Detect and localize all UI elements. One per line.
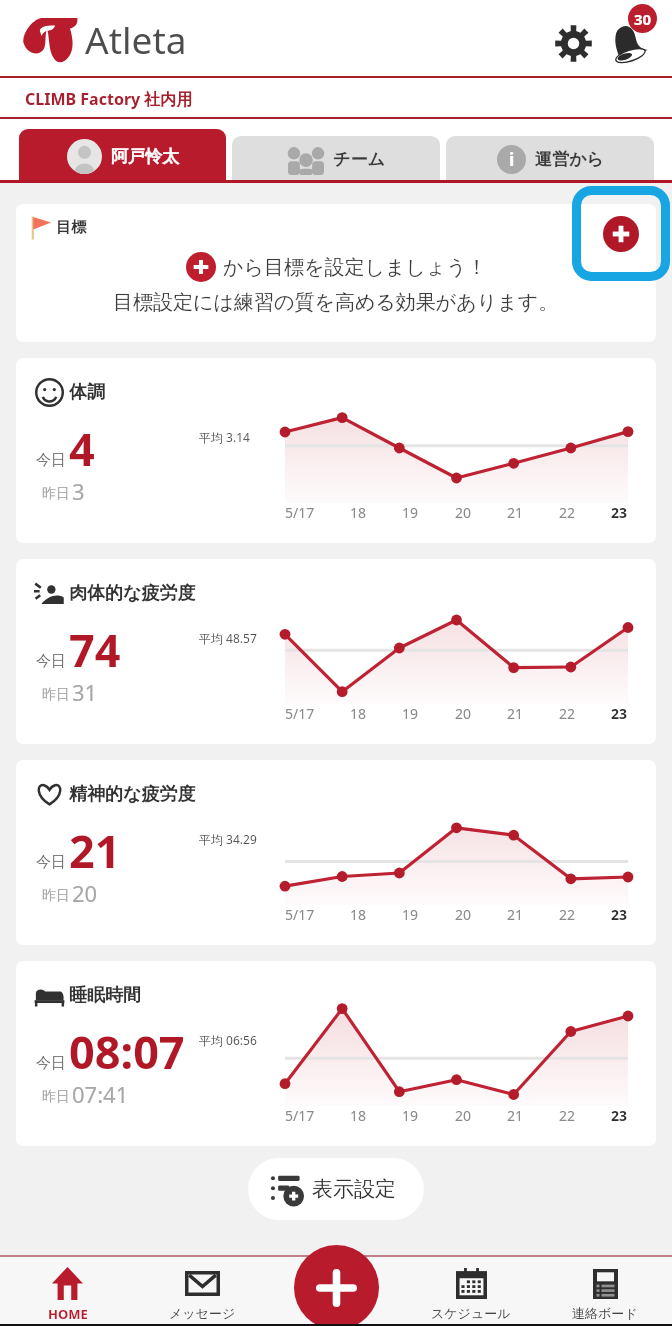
staticText: 22 bbox=[559, 704, 576, 723]
staticText: CLIMB Factory 社内用 bbox=[25, 88, 193, 110]
button[interactable]: Add goal bbox=[572, 186, 670, 281]
staticText: 昨日 bbox=[42, 1088, 70, 1106]
staticText: 18 bbox=[350, 704, 367, 723]
staticText: 18 bbox=[350, 905, 367, 924]
staticText: 5/17 bbox=[285, 704, 315, 723]
button[interactable]: i bbox=[446, 136, 654, 183]
staticText: 5/17 bbox=[285, 503, 315, 522]
staticText: 31 bbox=[72, 677, 98, 707]
staticText: 23 bbox=[611, 1106, 628, 1125]
staticText: 74 bbox=[69, 619, 121, 680]
button[interactable]: 肉体的な疲労度 bbox=[16, 559, 656, 744]
staticText: 21 bbox=[69, 820, 121, 881]
button[interactable]: 連絡ボード bbox=[538, 1267, 672, 1326]
staticText: Atleta bbox=[85, 14, 187, 64]
staticText: 08:07 bbox=[69, 1021, 185, 1082]
staticText: 30 bbox=[634, 9, 652, 29]
staticText: 21 bbox=[507, 503, 524, 522]
button[interactable]: 精神的な疲労度 bbox=[16, 760, 656, 945]
staticText: 目標設定には練習の質を高める効果があります。 bbox=[113, 290, 559, 315]
staticText: 阿戸怜太 bbox=[111, 146, 179, 167]
button[interactable]: チーム bbox=[232, 136, 440, 183]
staticText: メッセージ bbox=[169, 1305, 236, 1321]
staticText: 18 bbox=[350, 503, 367, 522]
button[interactable]: 阿戸怜太 bbox=[19, 129, 226, 183]
staticText: チーム bbox=[333, 149, 385, 170]
staticText: 昨日 bbox=[42, 887, 70, 905]
staticText: 18 bbox=[350, 1106, 367, 1125]
staticText: 昨日 bbox=[42, 686, 70, 704]
staticText: 平均 48.57 bbox=[199, 630, 257, 646]
staticText: 19 bbox=[402, 905, 419, 924]
button[interactable]: スケジュール bbox=[404, 1267, 538, 1326]
staticText: 4 bbox=[69, 418, 95, 479]
staticText: 23 bbox=[611, 905, 628, 924]
button[interactable]: HOME bbox=[0, 1267, 135, 1326]
button[interactable]: 体調 bbox=[16, 358, 656, 543]
staticText: 22 bbox=[559, 503, 576, 522]
staticText: 平均 06:56 bbox=[199, 1032, 257, 1048]
staticText: 20 bbox=[455, 704, 472, 723]
staticText: 体調 bbox=[69, 381, 105, 404]
staticText: 21 bbox=[507, 1106, 524, 1125]
button[interactable]: メッセージ bbox=[135, 1267, 270, 1326]
staticText: 07:41 bbox=[72, 1079, 129, 1109]
staticText: 5/17 bbox=[285, 1106, 315, 1125]
staticText: 今日 bbox=[36, 652, 66, 671]
staticText: 22 bbox=[559, 1106, 576, 1125]
staticText: 表示設定 bbox=[312, 1176, 396, 1202]
staticText: 22 bbox=[559, 905, 576, 924]
staticText: 3 bbox=[72, 476, 85, 506]
staticText: 今日 bbox=[36, 853, 66, 872]
staticText: 23 bbox=[611, 704, 628, 723]
staticText: 19 bbox=[402, 1106, 419, 1125]
staticText: 19 bbox=[402, 503, 419, 522]
staticText: i bbox=[509, 147, 515, 172]
staticText: 21 bbox=[507, 905, 524, 924]
staticText: 5/17 bbox=[285, 905, 315, 924]
button[interactable]: 睡眠時間 bbox=[16, 961, 656, 1146]
staticText: 連絡ボード bbox=[572, 1305, 638, 1321]
staticText: 肉体的な疲労度 bbox=[69, 582, 196, 605]
staticText: 運営から bbox=[535, 149, 604, 170]
staticText: 20 bbox=[455, 1106, 472, 1125]
staticText: 睡眠時間 bbox=[69, 984, 141, 1007]
staticText: 今日 bbox=[36, 1054, 66, 1073]
button[interactable]: Add bbox=[294, 1245, 379, 1326]
staticText: 平均 34.29 bbox=[199, 831, 257, 847]
staticText: 20 bbox=[455, 905, 472, 924]
button[interactable]: 表示設定 bbox=[248, 1158, 424, 1220]
button[interactable]: Notifications bbox=[608, 6, 664, 72]
staticText: 今日 bbox=[36, 451, 66, 470]
staticText: 20 bbox=[72, 878, 98, 908]
button[interactable]: Settings bbox=[546, 12, 600, 66]
staticText: HOME bbox=[48, 1305, 88, 1323]
staticText: 19 bbox=[402, 704, 419, 723]
staticText: 21 bbox=[507, 704, 524, 723]
staticText: スケジュール bbox=[431, 1305, 511, 1321]
staticText: から目標を設定しましょう！ bbox=[223, 255, 487, 280]
staticText: 平均 3.14 bbox=[199, 429, 250, 445]
staticText: 20 bbox=[455, 503, 472, 522]
staticText: 目標 bbox=[56, 218, 86, 237]
staticText: 精神的な疲労度 bbox=[69, 783, 196, 806]
staticText: 23 bbox=[611, 503, 628, 522]
staticText: 昨日 bbox=[42, 485, 70, 503]
